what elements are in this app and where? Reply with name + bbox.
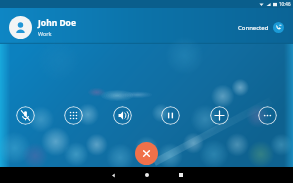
staticText: Work xyxy=(38,30,52,37)
button[interactable]: Back xyxy=(98,167,128,183)
staticText: 10:46 xyxy=(279,1,291,7)
button[interactable]: Hold xyxy=(161,106,180,125)
button[interactable]: Recents xyxy=(166,167,196,183)
button[interactable]: John Doe xyxy=(0,8,293,46)
staticText: Connected xyxy=(238,24,269,32)
other: Connected xyxy=(273,22,284,33)
button[interactable]: End call xyxy=(135,142,158,165)
button[interactable]: Connected xyxy=(238,22,284,33)
button[interactable]: Speaker xyxy=(113,106,132,125)
staticText: John Doe xyxy=(38,17,76,29)
button[interactable]: Add call xyxy=(210,106,229,125)
button[interactable]: More options xyxy=(258,106,277,125)
button[interactable]: Mute xyxy=(16,106,35,125)
button[interactable]: Home xyxy=(132,167,162,183)
button[interactable]: Dialpad xyxy=(64,106,83,125)
